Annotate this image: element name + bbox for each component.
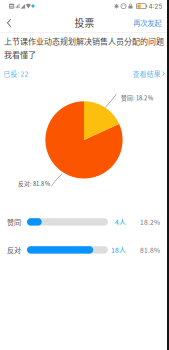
staticText: 反对: 81.8 % bbox=[18, 179, 50, 188]
staticText: 赞同 bbox=[7, 217, 21, 227]
staticText: 81.8% bbox=[140, 245, 160, 255]
staticText: 4人 bbox=[115, 217, 126, 227]
staticText: 上节课作业动态规划解决销售人员分配的问题我看懂了 bbox=[4, 35, 164, 60]
staticText: 赞同: 18.2 % bbox=[121, 94, 153, 102]
staticText: 反对 bbox=[7, 245, 21, 255]
staticText: 18人 bbox=[111, 245, 126, 255]
staticText: 投票 bbox=[74, 16, 94, 30]
button[interactable]: 再次发起 bbox=[133, 14, 161, 30]
staticText: 18.2% bbox=[140, 217, 160, 227]
staticText: 4:25 bbox=[148, 3, 162, 10]
staticText: 已投: 22 bbox=[3, 69, 28, 78]
button[interactable]: Back bbox=[0, 14, 18, 32]
button[interactable]: 查看结果 bbox=[133, 69, 164, 79]
button[interactable]: 已投: 22 bbox=[3, 68, 28, 78]
staticText: 再次发起 bbox=[133, 17, 161, 28]
staticText: 查看结果 bbox=[133, 69, 161, 78]
